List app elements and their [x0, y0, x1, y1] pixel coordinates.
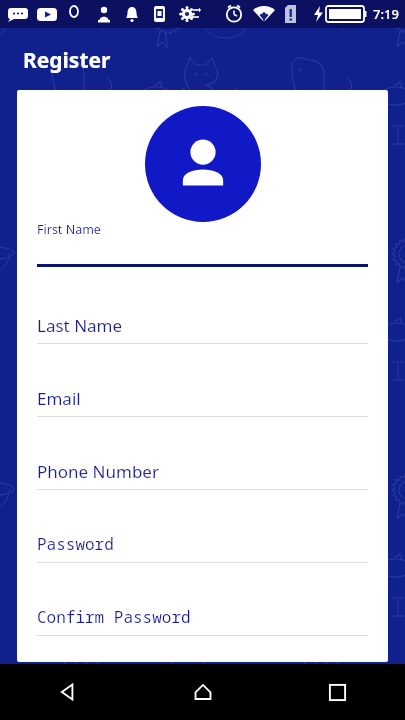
button[interactable]: Phone Number: [37, 456, 368, 504]
button[interactable]: Password: [37, 529, 368, 577]
staticText: First Name: [37, 221, 101, 238]
staticText: Phone Number: [37, 460, 159, 483]
staticText: Email: [37, 387, 81, 410]
button[interactable]: Back: [0, 664, 135, 720]
staticText: Register: [23, 46, 111, 75]
staticText: Confirm Password: [37, 606, 191, 628]
button[interactable]: Home: [135, 664, 270, 720]
button[interactable]: Profile photo: [145, 106, 261, 222]
button[interactable]: Last Name: [37, 310, 368, 358]
staticText: Last Name: [37, 314, 123, 337]
staticText: 7:19: [373, 5, 399, 23]
staticText: Password: [37, 533, 114, 555]
button[interactable]: Confirm Password: [37, 602, 368, 650]
button[interactable]: Recent apps: [270, 664, 405, 720]
button[interactable]: Email: [37, 383, 368, 431]
button[interactable]: First Name: [37, 214, 368, 274]
